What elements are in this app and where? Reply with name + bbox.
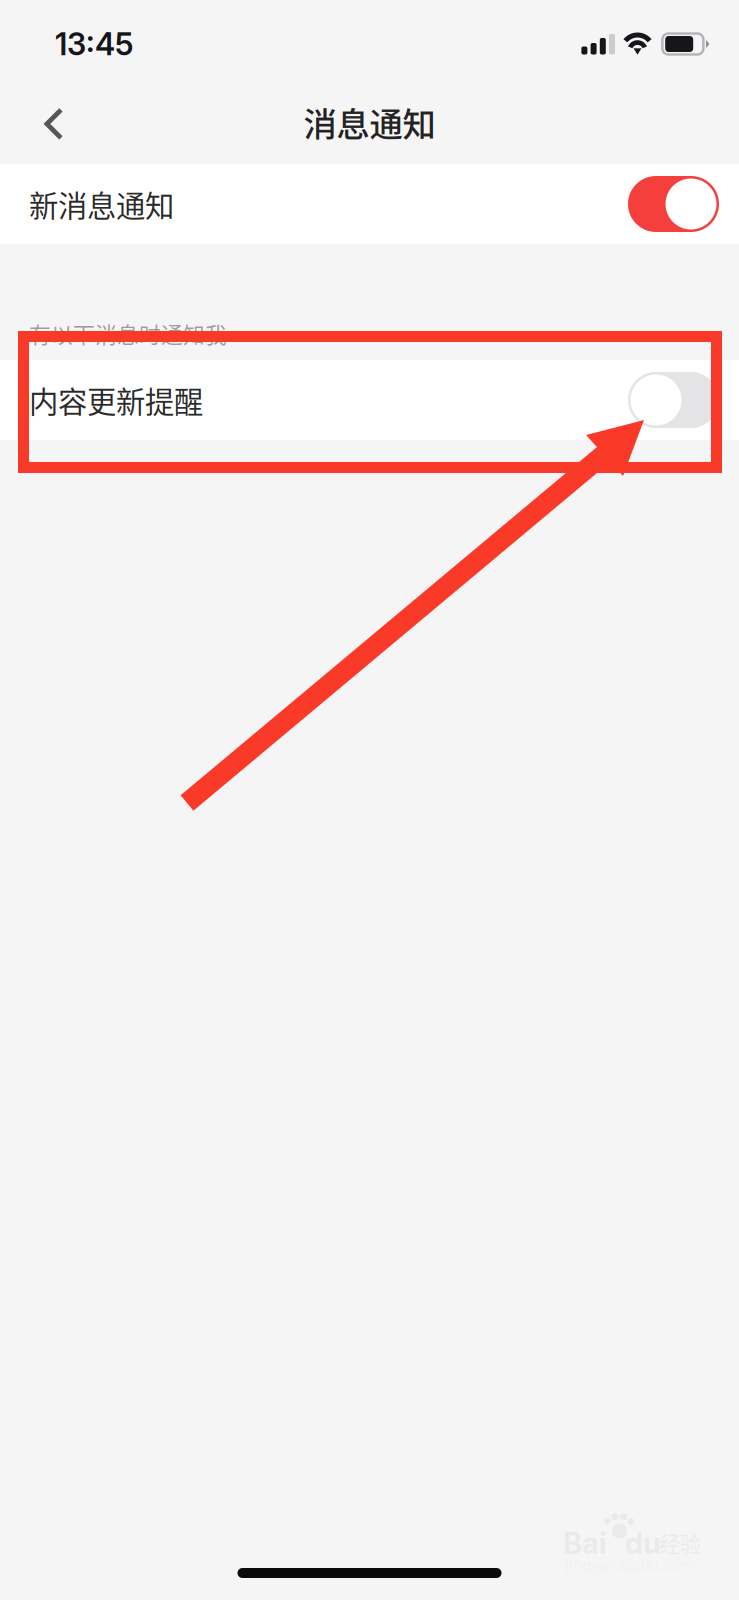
button[interactable]: 返回 [20, 90, 88, 158]
staticText: 消息通知 [303, 98, 435, 146]
staticText: 经验 [659, 1528, 701, 1558]
button[interactable]: 新消息通知 [0, 164, 739, 244]
staticText: Bai [563, 1525, 607, 1561]
staticText: 内容更新提醒 [29, 379, 203, 421]
staticText: du [625, 1525, 661, 1561]
staticText: 13:45 [55, 25, 133, 62]
button[interactable]: 内容更新提醒 [0, 360, 739, 440]
staticText: 新消息通知 [29, 183, 174, 225]
staticText: 有以下消息时通知我 [29, 318, 227, 349]
